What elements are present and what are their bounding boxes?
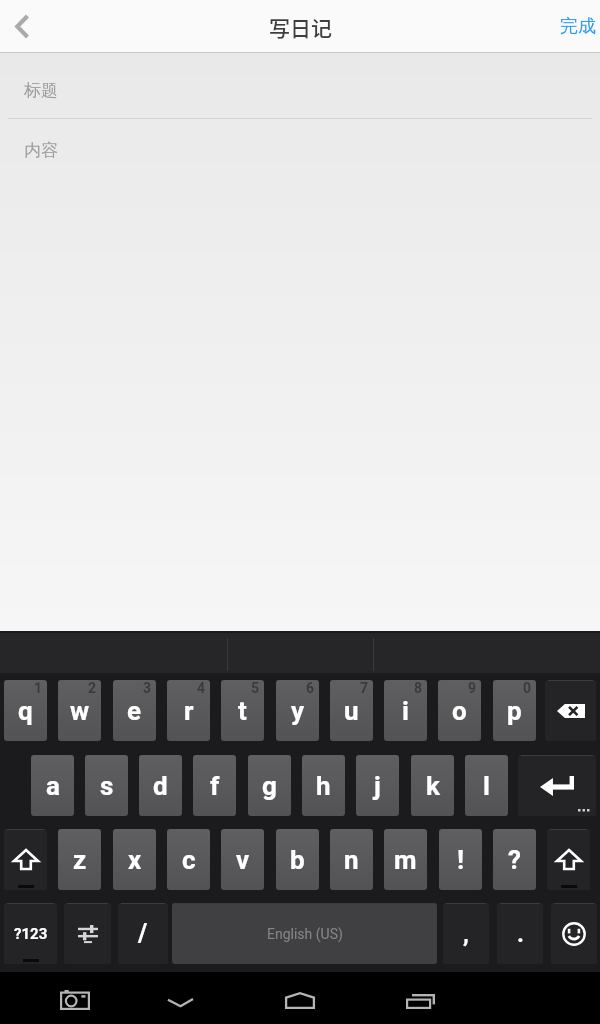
button[interactable]: r [167, 680, 210, 741]
staticText: m [394, 845, 417, 875]
staticText: c [182, 845, 196, 875]
button[interactable]: 标题 [0, 53, 600, 118]
button[interactable]: y [276, 680, 319, 741]
staticText: t [238, 696, 247, 726]
button[interactable]: m [384, 829, 427, 890]
button[interactable]: , [443, 903, 489, 964]
button[interactable] [518, 755, 596, 816]
staticText: x [128, 845, 142, 875]
staticText: b [290, 845, 305, 875]
staticText: y [291, 696, 305, 726]
staticText: 完成 [560, 15, 596, 38]
staticText: 9 [468, 680, 477, 696]
button[interactable]: 完成 [560, 15, 600, 38]
button[interactable] [545, 680, 596, 741]
staticText: ?123 [14, 925, 48, 943]
staticText: w [70, 696, 90, 726]
button[interactable] [551, 903, 597, 964]
staticText: d [153, 771, 168, 801]
button[interactable]: i [384, 680, 427, 741]
staticText: ? [508, 845, 521, 875]
button[interactable]: ?123 [4, 903, 57, 964]
button[interactable] [4, 829, 47, 890]
button[interactable]: b [276, 829, 319, 890]
staticText: e [127, 696, 142, 726]
staticText: f [210, 771, 220, 801]
staticText: 1 [34, 680, 43, 696]
staticText: l [483, 771, 490, 801]
button[interactable] [158, 977, 202, 1024]
staticText: English (US) [267, 926, 343, 942]
button[interactable]: p [493, 680, 536, 741]
staticText: 3 [143, 680, 152, 696]
staticText: h [316, 771, 331, 801]
staticText: , [463, 920, 469, 948]
staticText: a [46, 771, 60, 801]
staticText: n [344, 845, 359, 875]
button[interactable]: d [139, 755, 182, 816]
button[interactable]: j [356, 755, 399, 816]
staticText: 写日记 [269, 12, 332, 42]
staticText: p [507, 696, 522, 726]
staticText: i [402, 696, 409, 726]
staticText: k [426, 771, 440, 801]
staticText: 6 [306, 680, 315, 696]
button[interactable] [0, 0, 44, 53]
button[interactable]: n [330, 829, 373, 890]
button[interactable]: k [411, 755, 454, 816]
button[interactable]: x [113, 829, 156, 890]
button[interactable] [64, 903, 111, 964]
staticText: v [236, 845, 250, 875]
button[interactable]: s [85, 755, 128, 816]
button[interactable]: ! [439, 829, 482, 890]
staticText: . [517, 920, 524, 948]
button[interactable] [53, 974, 97, 1024]
staticText: 8 [414, 680, 423, 696]
button[interactable]: v [221, 829, 264, 890]
button[interactable]: . [497, 903, 543, 964]
button[interactable] [547, 829, 590, 890]
staticText: 7 [360, 680, 369, 696]
staticText: s [100, 771, 114, 801]
staticText: u [344, 696, 359, 726]
button[interactable] [278, 974, 322, 1024]
staticText: 内容 [24, 140, 58, 161]
button[interactable]: u [330, 680, 373, 741]
staticText: 标题 [24, 80, 58, 101]
button[interactable]: c [167, 829, 210, 890]
staticText: / [138, 919, 148, 948]
button[interactable]: f [193, 755, 236, 816]
button[interactable]: h [302, 755, 345, 816]
button[interactable]: 内容 [0, 119, 600, 181]
button[interactable]: l [465, 755, 508, 816]
staticText: 2 [88, 680, 97, 696]
staticText: 4 [197, 680, 206, 696]
staticText: ! [457, 845, 465, 875]
staticText: 0 [523, 680, 532, 696]
button[interactable] [398, 975, 442, 1024]
button[interactable]: t [221, 680, 264, 741]
staticText: g [262, 771, 277, 801]
button[interactable]: / [118, 903, 168, 964]
button[interactable]: q [4, 680, 47, 741]
staticText: q [18, 696, 33, 726]
staticText: o [452, 696, 467, 726]
button[interactable]: e [113, 680, 156, 741]
button[interactable]: ? [493, 829, 536, 890]
staticText: r [184, 696, 194, 726]
staticText: 5 [251, 680, 260, 696]
staticText: j [374, 771, 381, 801]
button[interactable]: a [31, 755, 74, 816]
button[interactable]: z [58, 829, 101, 890]
button[interactable]: w [58, 680, 101, 741]
staticText: z [73, 845, 87, 875]
button[interactable]: g [248, 755, 291, 816]
button[interactable]: o [438, 680, 481, 741]
button[interactable]: English (US) [172, 903, 437, 964]
